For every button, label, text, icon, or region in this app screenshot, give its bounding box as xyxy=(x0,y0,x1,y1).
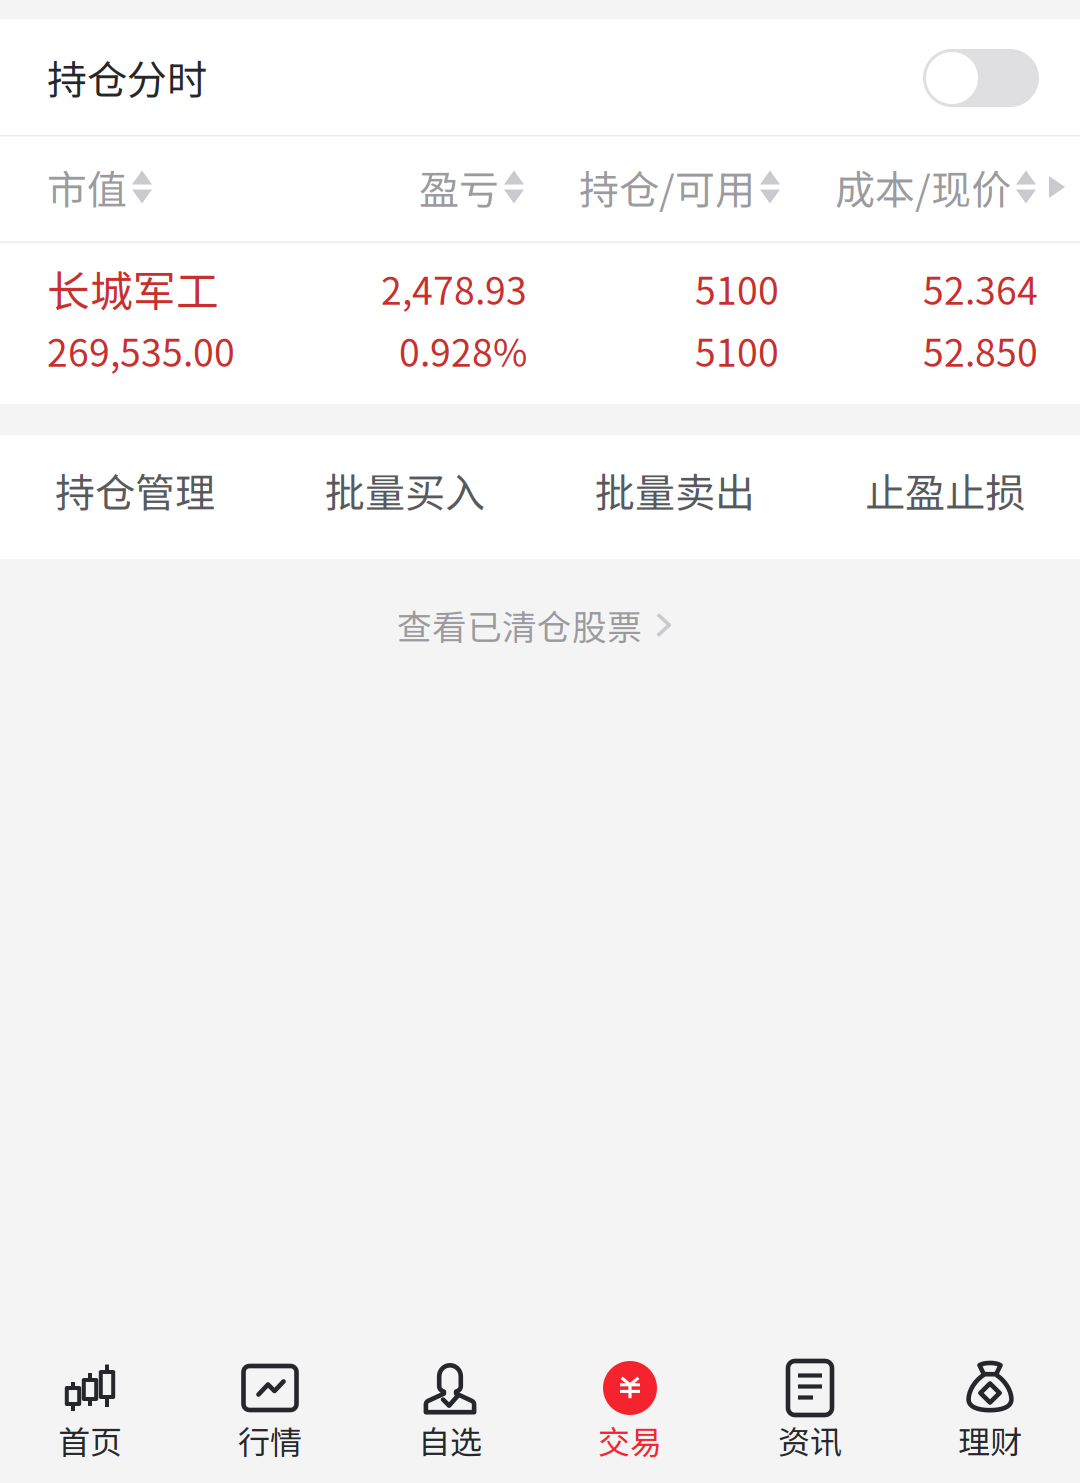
staticText: 成本/现价 xyxy=(835,158,1011,216)
button[interactable]: 资讯 xyxy=(720,1343,900,1483)
button[interactable]: 长城军工 xyxy=(0,243,1080,404)
button[interactable]: 持仓分时 xyxy=(923,48,1039,106)
staticText: 交易 xyxy=(598,1417,662,1463)
button[interactable]: 行情 xyxy=(180,1343,360,1483)
staticText: 长城军工 xyxy=(47,258,219,319)
staticText: 理财 xyxy=(958,1417,1022,1463)
button[interactable]: 交易 xyxy=(540,1343,720,1483)
button[interactable]: 盈亏 xyxy=(419,158,524,216)
staticText: 269,535.00 xyxy=(47,323,235,378)
staticText: 2,478.93 xyxy=(381,261,527,316)
staticText: 52.850 xyxy=(923,323,1038,378)
staticText: 52.364 xyxy=(923,261,1038,316)
button[interactable]: 成本/现价 xyxy=(835,158,1036,216)
staticText: 批量买入 xyxy=(325,461,485,519)
button[interactable]: 止盈止损 xyxy=(810,435,1080,559)
button[interactable]: 批量卖出 xyxy=(540,435,810,559)
staticText: 资讯 xyxy=(778,1417,842,1463)
staticText: 5100 xyxy=(695,323,779,378)
staticText: 止盈止损 xyxy=(865,461,1025,519)
staticText: 持仓管理 xyxy=(55,461,215,519)
staticText: 查看已清仓股票 xyxy=(397,600,642,650)
button[interactable]: 首页 xyxy=(0,1343,180,1483)
staticText: 首页 xyxy=(58,1417,122,1463)
button[interactable]: 查看已清仓股票 xyxy=(0,559,1080,691)
button[interactable]: 市值 xyxy=(47,158,152,216)
button[interactable]: 自选 xyxy=(360,1343,540,1483)
button[interactable]: 理财 xyxy=(900,1343,1080,1483)
staticText: 盈亏 xyxy=(419,158,499,216)
button[interactable]: 批量买入 xyxy=(270,435,540,559)
staticText: 5100 xyxy=(695,261,779,316)
staticText: 自选 xyxy=(418,1417,482,1463)
staticText: 市值 xyxy=(47,158,127,216)
staticText: 行情 xyxy=(238,1417,302,1463)
button[interactable]: 持仓管理 xyxy=(0,435,270,559)
button[interactable]: 持仓/可用 xyxy=(579,158,780,216)
staticText: 持仓/可用 xyxy=(579,158,755,216)
staticText: 持仓分时 xyxy=(47,48,207,106)
button[interactable]: 更多列 xyxy=(1049,176,1065,198)
staticText: 0.928% xyxy=(399,323,527,378)
staticText: 批量卖出 xyxy=(595,461,755,519)
